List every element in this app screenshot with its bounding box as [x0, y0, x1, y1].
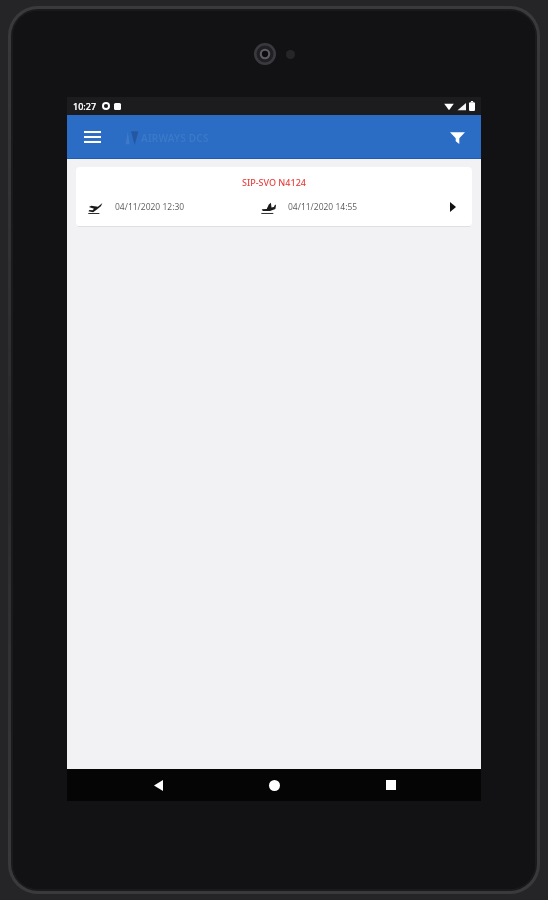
button[interactable]: Back	[132, 770, 184, 800]
staticText: AIRWAYS DCS	[141, 131, 209, 145]
button[interactable]: Recent apps	[365, 770, 417, 800]
button[interactable]: SIP-SVO N4124	[76, 167, 472, 226]
staticText: 04/11/2020 12:30	[115, 201, 185, 213]
button[interactable]: Filter flights	[439, 119, 475, 155]
button[interactable]: Open flight details	[446, 197, 460, 217]
staticText: 10:27	[73, 100, 97, 112]
button[interactable]: Home	[248, 770, 300, 800]
staticText: 04/11/2020 14:55	[288, 201, 358, 213]
staticText: SIP-SVO N4124	[86, 176, 462, 188]
button[interactable]: Open navigation menu	[75, 120, 109, 154]
